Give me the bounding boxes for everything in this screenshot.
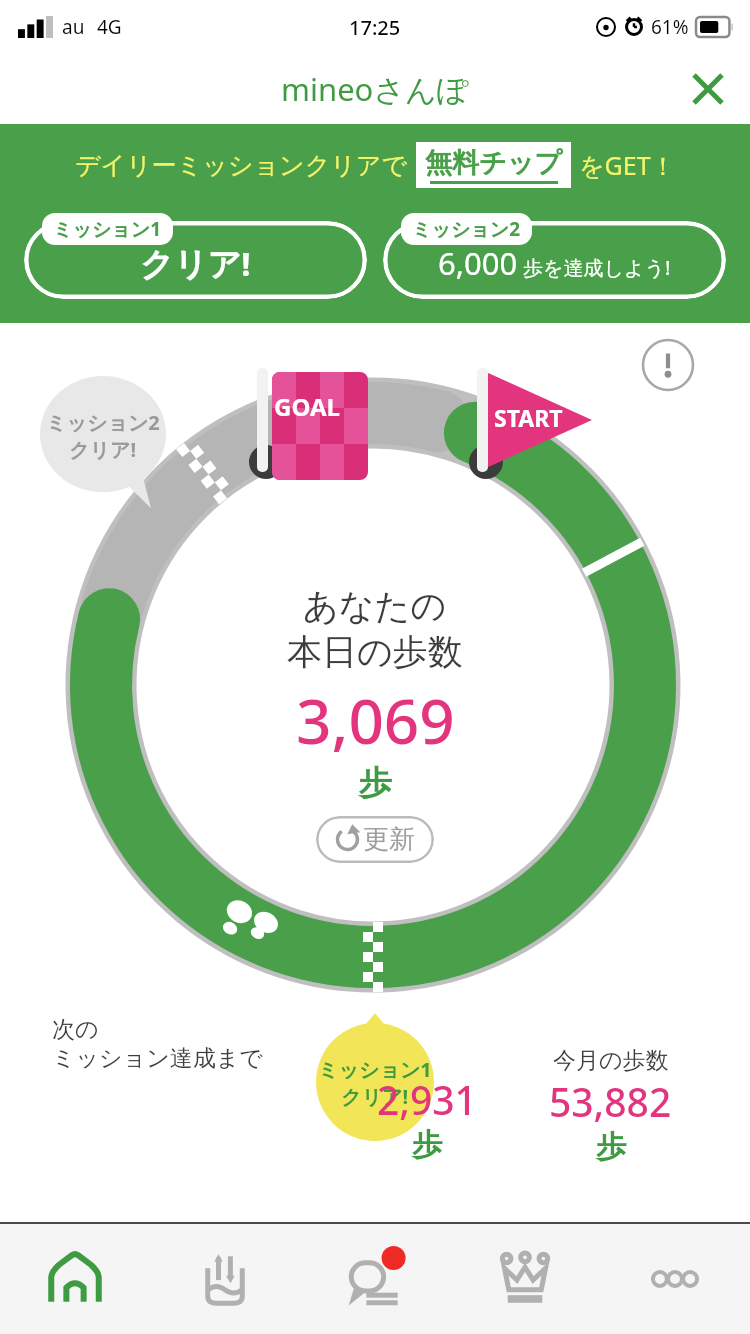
staticText: 次の — [52, 1015, 99, 1044]
staticText: mineoさんぽ — [281, 68, 469, 110]
staticText: 無料チップ — [425, 146, 562, 180]
staticText: ミッション1 — [318, 1056, 432, 1083]
staticText: 4G — [97, 14, 122, 40]
button[interactable]: Information — [640, 337, 696, 393]
staticText: クリア! — [140, 241, 251, 286]
staticText: ミッション達成まで — [52, 1044, 263, 1073]
staticText: 歩 — [596, 1128, 626, 1166]
staticText: 更新 — [363, 823, 415, 856]
staticText: GOAL — [274, 390, 340, 423]
staticText: 3,069 — [296, 678, 455, 762]
staticText: あなたの — [303, 584, 447, 628]
staticText: 6,000 — [438, 242, 518, 284]
staticText: START — [494, 402, 563, 433]
button[interactable]: Close — [680, 61, 736, 117]
button[interactable]: Chat — [300, 1224, 450, 1334]
staticText: 歩 — [412, 1126, 442, 1164]
staticText: ミッション2 — [412, 216, 521, 242]
staticText: ミッション1 — [53, 216, 162, 242]
button[interactable]: 更新 — [316, 816, 434, 863]
button[interactable]: クリア! — [24, 221, 367, 299]
staticText: をGET！ — [579, 148, 676, 182]
staticText: 53,882 — [549, 1075, 672, 1128]
button[interactable]: Rewards — [450, 1224, 600, 1334]
staticText: クリア! — [341, 1083, 409, 1110]
staticText: クリア! — [69, 436, 137, 463]
staticText: デイリーミッションクリアで — [75, 150, 408, 181]
button[interactable]: 無料チップ — [425, 146, 562, 184]
button[interactable]: More — [600, 1224, 750, 1334]
staticText: au — [62, 14, 85, 40]
button[interactable]: Home — [0, 1224, 150, 1334]
button[interactable]: 6,000 — [383, 221, 726, 299]
staticText: 歩 — [359, 762, 392, 804]
staticText: ミッション2 — [46, 409, 160, 436]
button[interactable]: Data transfer — [150, 1224, 300, 1334]
staticText: 本日の歩数 — [287, 630, 463, 674]
staticText: 歩を達成しよう! — [523, 254, 671, 281]
staticText: 2,931 — [377, 1073, 477, 1126]
staticText: 17:25 — [349, 14, 401, 41]
staticText: 61% — [651, 14, 689, 40]
staticText: 今月の歩数 — [553, 1046, 669, 1075]
